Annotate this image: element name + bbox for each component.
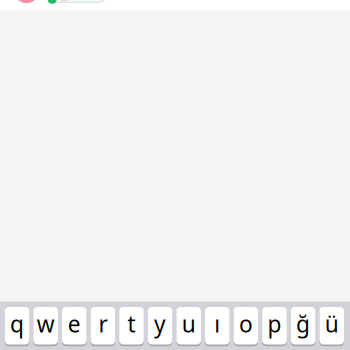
staticText: u — [182, 309, 196, 339]
button[interactable]: w — [33, 307, 58, 346]
button[interactable]: ı — [205, 307, 230, 346]
button[interactable]: Message — [49, 0, 107, 2]
button[interactable]: p — [262, 307, 287, 346]
staticText: o — [239, 309, 253, 339]
staticText: ü — [325, 309, 339, 339]
staticText: w — [37, 309, 55, 339]
button[interactable]: Send — [48, 0, 57, 4]
button[interactable]: q — [5, 307, 29, 346]
button[interactable]: ü — [319, 307, 344, 346]
button[interactable]: r — [91, 307, 115, 346]
staticText: p — [267, 309, 281, 339]
staticText: ı — [214, 309, 220, 339]
staticText: r — [98, 309, 107, 339]
button[interactable]: e — [62, 307, 87, 346]
button[interactable]: u — [176, 307, 201, 346]
staticText: t — [127, 309, 135, 339]
button[interactable]: ğ — [291, 307, 315, 346]
staticText: q — [10, 309, 24, 339]
staticText: ğ — [296, 309, 310, 339]
button[interactable]: y — [148, 307, 172, 346]
button[interactable]: t — [119, 307, 144, 346]
staticText: e — [68, 309, 81, 339]
button[interactable]: Profile — [14, 0, 40, 3]
staticText: y — [154, 309, 166, 339]
button[interactable]: o — [234, 307, 258, 346]
